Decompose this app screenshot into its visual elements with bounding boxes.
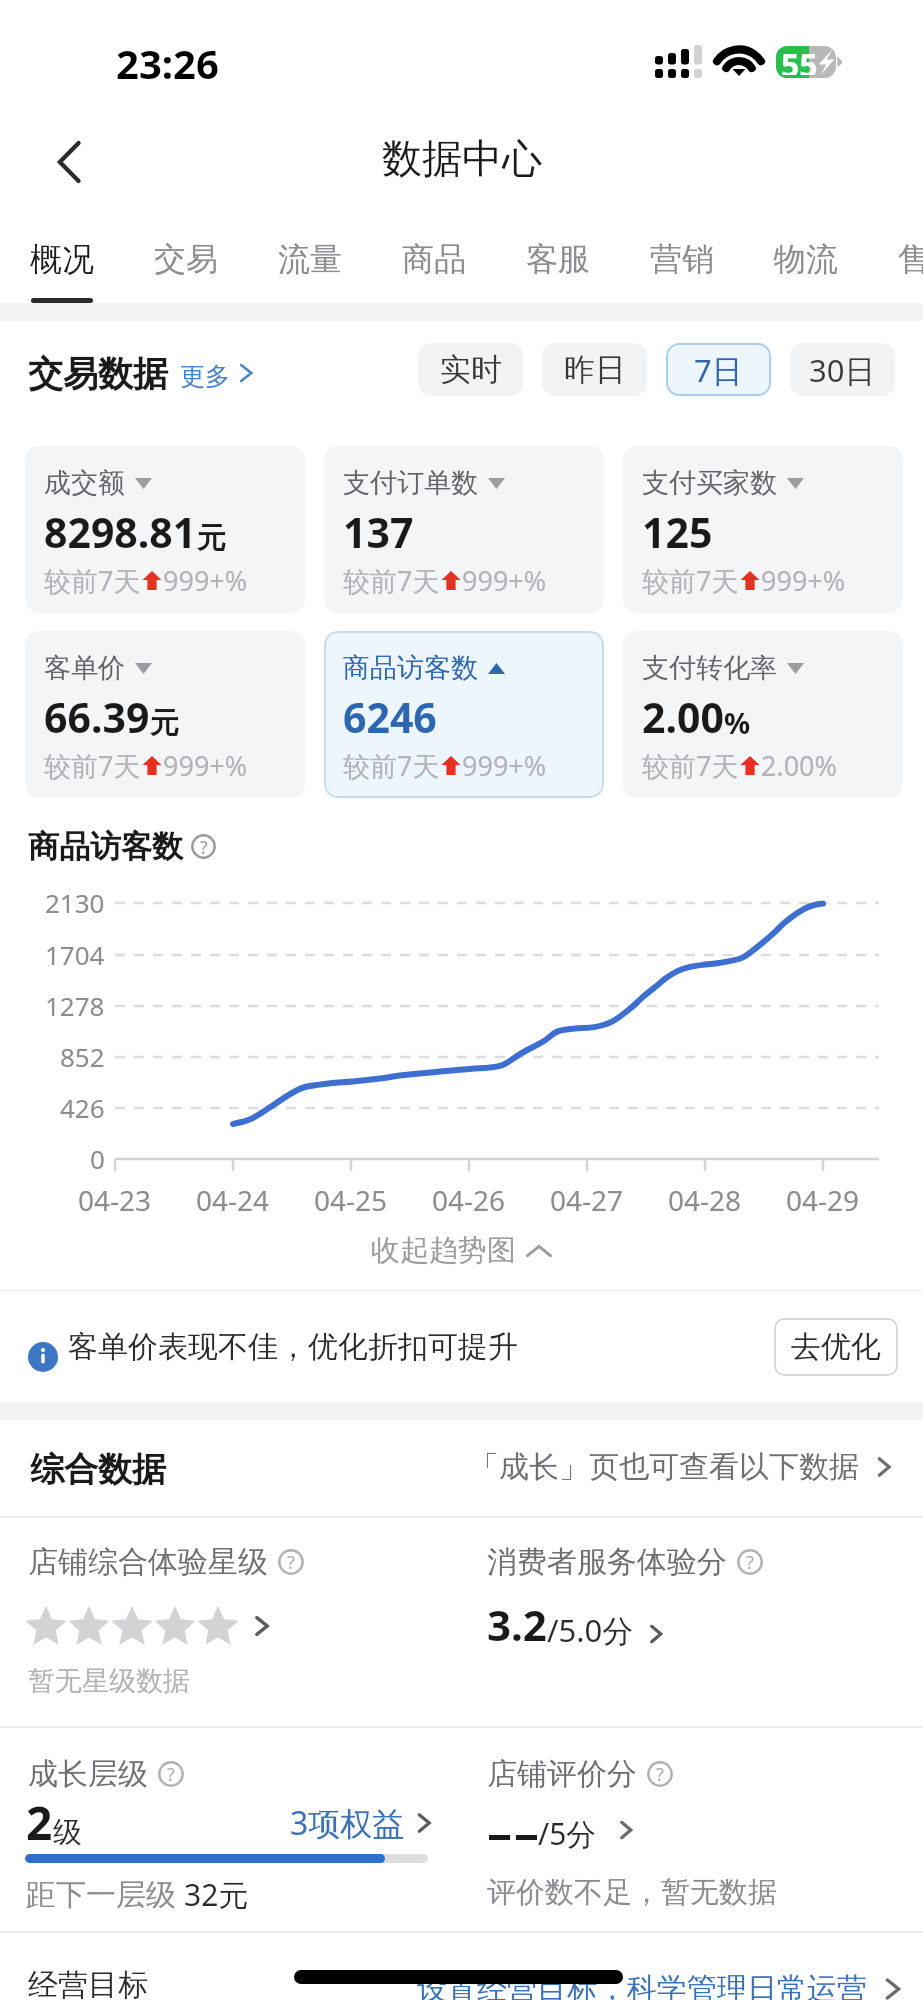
- staticText: 支付订单数: [343, 466, 478, 500]
- button[interactable]: /5分: [487, 1792, 687, 1852]
- staticText: 较前7天: [642, 562, 739, 599]
- staticText: 0: [90, 1141, 105, 1176]
- staticText: 综合数据: [30, 1448, 166, 1491]
- staticText: 04-23: [78, 1181, 152, 1219]
- button[interactable]: 支付买家数: [623, 446, 903, 613]
- staticText: 6246: [343, 689, 437, 745]
- staticText: 售后: [898, 239, 923, 279]
- staticText: 2: [26, 1791, 53, 1854]
- staticText: 2.00: [642, 689, 724, 745]
- staticText: 2.00%: [761, 747, 838, 784]
- staticText: ?: [200, 835, 208, 859]
- staticText: 数据中心: [382, 133, 542, 183]
- staticText: 55: [781, 43, 818, 75]
- staticText: 商品访客数: [343, 651, 478, 685]
- button[interactable]: 商品: [383, 221, 485, 303]
- staticText: 125: [642, 504, 713, 560]
- staticText: 较前7天: [642, 747, 739, 784]
- staticText: /5分: [538, 1813, 597, 1854]
- staticText: 商品访客数: [28, 827, 183, 866]
- button[interactable]: Back: [37, 130, 101, 194]
- staticText: 概况: [30, 239, 94, 279]
- button[interactable]: 去优化: [774, 1318, 898, 1376]
- staticText: 852: [60, 1039, 105, 1074]
- button[interactable]: 昨日: [542, 343, 647, 396]
- staticText: 「成长」页也可查看以下数据: [469, 1448, 859, 1486]
- staticText: 1278: [45, 988, 105, 1023]
- button[interactable]: 商品访客数: [324, 631, 604, 798]
- staticText: %: [724, 703, 751, 742]
- staticText: 7日: [694, 349, 743, 391]
- staticText: 较前7天: [44, 747, 141, 784]
- staticText: 交易数据: [28, 352, 168, 396]
- staticText: 8298.81: [44, 504, 197, 560]
- staticText: 23:26: [116, 36, 219, 90]
- button[interactable]: 收起趋势图: [371, 1232, 552, 1269]
- staticText: 暂无星级数据: [28, 1664, 190, 1698]
- staticText: 32元: [184, 1874, 249, 1915]
- staticText: 元: [150, 705, 179, 742]
- staticText: 经营目标: [28, 1966, 148, 2000]
- staticText: 更多: [180, 361, 230, 392]
- staticText: 营销: [650, 239, 714, 279]
- staticText: 支付买家数: [642, 466, 777, 500]
- staticText: 店铺综合体验星级: [28, 1543, 268, 1581]
- staticText: ?: [167, 1762, 175, 1787]
- staticText: 交易: [154, 239, 218, 279]
- staticText: 999+%: [462, 562, 547, 599]
- staticText: 3项权益: [290, 1801, 405, 1845]
- button[interactable]: 「成长」页也可查看以下数据: [469, 1448, 897, 1486]
- staticText: 支付转化率: [642, 651, 777, 685]
- staticText: ?: [287, 1550, 295, 1575]
- staticText: 较前7天: [343, 562, 440, 599]
- staticText: 999+%: [163, 747, 248, 784]
- button[interactable]: 交易: [135, 221, 237, 303]
- staticText: 商品: [402, 239, 466, 279]
- staticText: 66.39: [44, 689, 150, 745]
- button[interactable]: 物流: [755, 221, 857, 303]
- staticText: 3.2: [487, 1596, 547, 1653]
- button[interactable]: 营销: [631, 221, 733, 303]
- staticText: 级: [53, 1814, 82, 1851]
- button[interactable]: 售后: [879, 221, 923, 303]
- staticText: 04-28: [668, 1181, 742, 1219]
- button[interactable]: 3.2: [487, 1596, 668, 1653]
- button[interactable]: 支付转化率: [623, 631, 903, 798]
- button[interactable]: 客服: [507, 221, 609, 303]
- staticText: 137: [343, 504, 414, 560]
- button[interactable]: 30日: [790, 343, 895, 396]
- staticText: 客单价: [44, 651, 125, 685]
- staticText: 元: [197, 520, 226, 557]
- staticText: 04-24: [196, 1181, 270, 1219]
- staticText: 1704: [45, 937, 105, 972]
- staticText: 消费者服务体验分: [487, 1543, 727, 1581]
- staticText: 成交额: [44, 466, 125, 500]
- staticText: ?: [656, 1762, 664, 1787]
- staticText: ?: [746, 1550, 754, 1575]
- button[interactable]: 3项权益: [290, 1801, 437, 1845]
- staticText: 距下一层级: [26, 1876, 176, 1914]
- staticText: 流量: [278, 239, 342, 279]
- button[interactable]: 支付订单数: [324, 446, 604, 613]
- staticText: 实时: [440, 350, 502, 389]
- button[interactable]: [29, 1609, 275, 1643]
- button[interactable]: 7日: [666, 343, 771, 396]
- button[interactable]: 设置经营目标，科学管理日常运营: [417, 1970, 907, 2000]
- staticText: 客单价表现不佳，优化折扣可提升: [68, 1328, 518, 1366]
- staticText: 30日: [809, 349, 876, 391]
- staticText: 04-27: [550, 1181, 624, 1219]
- staticText: 04-25: [314, 1181, 388, 1219]
- staticText: 999+%: [462, 747, 547, 784]
- staticText: 426: [60, 1090, 105, 1125]
- button[interactable]: 概况: [11, 221, 113, 303]
- button[interactable]: 流量: [259, 221, 361, 303]
- button[interactable]: 实时: [418, 343, 523, 396]
- staticText: 04-29: [786, 1181, 860, 1219]
- staticText: 店铺评价分: [487, 1755, 637, 1793]
- button[interactable]: 成交额: [25, 446, 305, 613]
- staticText: 较前7天: [44, 562, 141, 599]
- staticText: 999+%: [163, 562, 248, 599]
- button[interactable]: 交易数据: [28, 352, 254, 396]
- button[interactable]: 客单价: [25, 631, 305, 798]
- staticText: 较前7天: [343, 747, 440, 784]
